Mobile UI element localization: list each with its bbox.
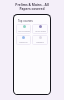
staticText: Papers covered [19,6,45,10]
staticText: State PSC [19,41,28,44]
staticText: Prelims & Mains - All [15,2,49,6]
staticText: UPSC Mains [35,30,46,33]
button[interactable]: Optional [32,35,48,45]
button[interactable]: Top courses [18,19,47,23]
staticText: Top courses [18,19,33,23]
button[interactable]: UPSC Mains [32,24,48,34]
staticText: UPSC Prelims [18,30,30,33]
staticText: Optional [36,41,44,44]
button[interactable]: State PSC [16,35,31,45]
button[interactable]: UPSC Prelims [16,24,31,34]
